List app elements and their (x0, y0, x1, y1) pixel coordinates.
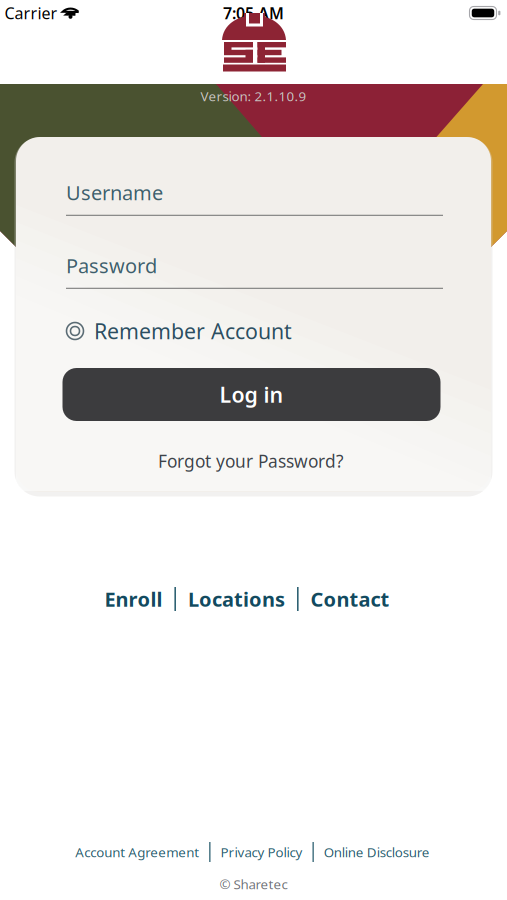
staticText: Locations (188, 586, 285, 612)
staticText: Carrier (4, 2, 57, 24)
button[interactable]: Account Agreement (75, 843, 199, 861)
button[interactable]: Remember Account (66, 317, 443, 345)
staticText: Password (66, 252, 157, 279)
button[interactable]: Username (66, 179, 443, 216)
staticText: Remember Account (94, 317, 292, 345)
staticText: Account Agreement (75, 843, 199, 861)
button[interactable]: Online Disclosure (324, 843, 430, 861)
button[interactable]: Enroll (104, 586, 162, 612)
staticText: Forgot your Password? (158, 449, 344, 472)
staticText: Version: 2.1.10.9 (200, 87, 306, 105)
button[interactable]: Privacy Policy (220, 843, 302, 861)
staticText: © Sharetec (219, 875, 287, 893)
staticText: Enroll (104, 586, 162, 612)
staticText: Privacy Policy (220, 843, 302, 861)
button[interactable]: Log in (62, 368, 440, 421)
staticText: Online Disclosure (324, 843, 430, 861)
button[interactable]: Forgot your Password? (158, 449, 344, 472)
staticText: Contact (311, 586, 390, 612)
staticText: Log in (219, 380, 283, 409)
button[interactable]: Password (66, 252, 443, 289)
staticText: 7:05 AM (223, 2, 284, 24)
button[interactable]: Locations (188, 586, 285, 612)
staticText: Username (66, 179, 163, 206)
button[interactable]: Contact (311, 586, 390, 612)
